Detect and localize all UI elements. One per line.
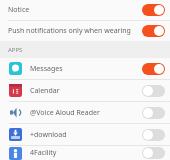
button[interactable]: @Voice Aloud Reader bbox=[142, 107, 165, 119]
button[interactable]: 4Facility bbox=[142, 147, 165, 159]
staticText: Messages bbox=[30, 64, 142, 74]
button[interactable]: Push notifications only when wearing dev… bbox=[142, 25, 165, 37]
button[interactable]: +download bbox=[0, 124, 170, 145]
button[interactable]: Calendar bbox=[0, 80, 170, 101]
button[interactable]: 4Facility bbox=[0, 146, 170, 160]
staticText: Calendar bbox=[30, 86, 142, 96]
button[interactable]: Messages bbox=[0, 58, 170, 79]
staticText: +download bbox=[30, 130, 142, 140]
button[interactable]: @Voice Aloud Reader bbox=[0, 102, 170, 123]
staticText: Push notifications only when wearing dev… bbox=[8, 26, 142, 36]
button[interactable]: +download bbox=[142, 129, 165, 141]
staticText: 4Facility bbox=[30, 148, 142, 158]
button[interactable]: Calendar bbox=[142, 85, 165, 97]
staticText: Notice bbox=[8, 5, 142, 15]
button[interactable]: Notice bbox=[0, 0, 170, 20]
button[interactable]: Notice bbox=[142, 4, 165, 16]
staticText: @Voice Aloud Reader bbox=[30, 108, 142, 118]
staticText: APPS bbox=[8, 46, 23, 54]
button[interactable]: Messages bbox=[142, 63, 165, 75]
button[interactable]: Push notifications only when wearing dev… bbox=[0, 21, 170, 41]
